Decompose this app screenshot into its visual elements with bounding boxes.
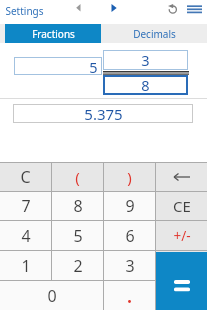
staticText: 4: [21, 225, 31, 247]
button[interactable]: CE: [156, 192, 207, 220]
staticText: 8: [73, 195, 83, 217]
button[interactable]: [166, 3, 179, 16]
button[interactable]: 8: [52, 192, 103, 220]
button[interactable]: 5: [52, 221, 103, 250]
staticText: 3: [141, 50, 150, 70]
button[interactable]: +/-: [156, 221, 207, 250]
button[interactable]: [104, 281, 155, 310]
button[interactable]: 6: [104, 221, 155, 250]
staticText: C: [20, 166, 31, 188]
staticText: ): [127, 167, 132, 187]
staticText: +/-: [173, 227, 191, 245]
button[interactable]: Settings: [2, 0, 47, 22]
staticText: 5.375: [84, 104, 123, 123]
staticText: 0: [47, 285, 57, 307]
staticText: 2: [73, 255, 83, 277]
staticText: 3: [125, 255, 135, 277]
button[interactable]: 5: [14, 57, 102, 75]
staticText: 1: [21, 255, 31, 277]
button[interactable]: 5.375: [13, 104, 193, 123]
staticText: (: [75, 167, 80, 187]
button[interactable]: [185, 3, 204, 17]
staticText: 8: [141, 75, 150, 95]
staticText: 6: [125, 225, 135, 247]
button[interactable]: 9: [104, 192, 155, 220]
button[interactable]: 4: [0, 221, 51, 250]
button[interactable]: ): [104, 163, 155, 191]
button[interactable]: 8: [103, 75, 188, 95]
staticText: 5: [73, 225, 83, 247]
staticText: 7: [21, 195, 31, 217]
staticText: CE: [173, 196, 191, 216]
button[interactable]: 3: [104, 251, 155, 280]
staticText: Settings: [5, 4, 44, 18]
button[interactable]: Decimals: [101, 24, 207, 43]
button[interactable]: (: [52, 163, 103, 191]
button[interactable]: Fractions: [5, 24, 101, 43]
staticText: Decimals: [133, 27, 176, 41]
button[interactable]: [73, 2, 85, 14]
button[interactable]: [156, 252, 207, 310]
button[interactable]: [108, 2, 120, 14]
staticText: Fractions: [32, 27, 75, 41]
button[interactable]: 2: [52, 251, 103, 280]
button[interactable]: C: [0, 163, 51, 191]
button[interactable]: 1: [0, 251, 51, 280]
staticText: 9: [125, 195, 135, 217]
button[interactable]: [156, 163, 207, 191]
button[interactable]: 7: [0, 192, 51, 220]
staticText: 5: [89, 57, 98, 75]
button[interactable]: 0: [0, 281, 103, 310]
button[interactable]: 3: [103, 50, 188, 70]
